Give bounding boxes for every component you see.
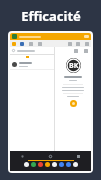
button[interactable]: Back xyxy=(20,154,25,159)
button[interactable]: App xyxy=(24,162,29,167)
button[interactable]: App xyxy=(66,162,71,167)
button[interactable]: Home xyxy=(48,154,53,159)
button[interactable]: App xyxy=(59,162,64,167)
button[interactable] xyxy=(12,47,52,54)
button[interactable]: App xyxy=(31,162,36,167)
button[interactable]: Recents xyxy=(76,154,81,159)
button[interactable]: Menu xyxy=(12,34,17,39)
button[interactable]: Action xyxy=(70,100,77,107)
staticText: BK xyxy=(69,61,79,71)
button[interactable]: Tool xyxy=(74,49,78,53)
button[interactable]: App xyxy=(52,162,57,167)
button[interactable]: App xyxy=(45,162,50,167)
button[interactable]: App xyxy=(38,162,43,167)
button[interactable] xyxy=(12,60,52,69)
button[interactable]: App xyxy=(73,162,78,167)
button[interactable]: New xyxy=(12,42,16,46)
button[interactable]: Tool xyxy=(84,49,88,53)
button[interactable]: Save xyxy=(20,42,24,46)
staticText: Efficacité xyxy=(21,7,81,25)
button[interactable]: Account xyxy=(84,35,89,38)
